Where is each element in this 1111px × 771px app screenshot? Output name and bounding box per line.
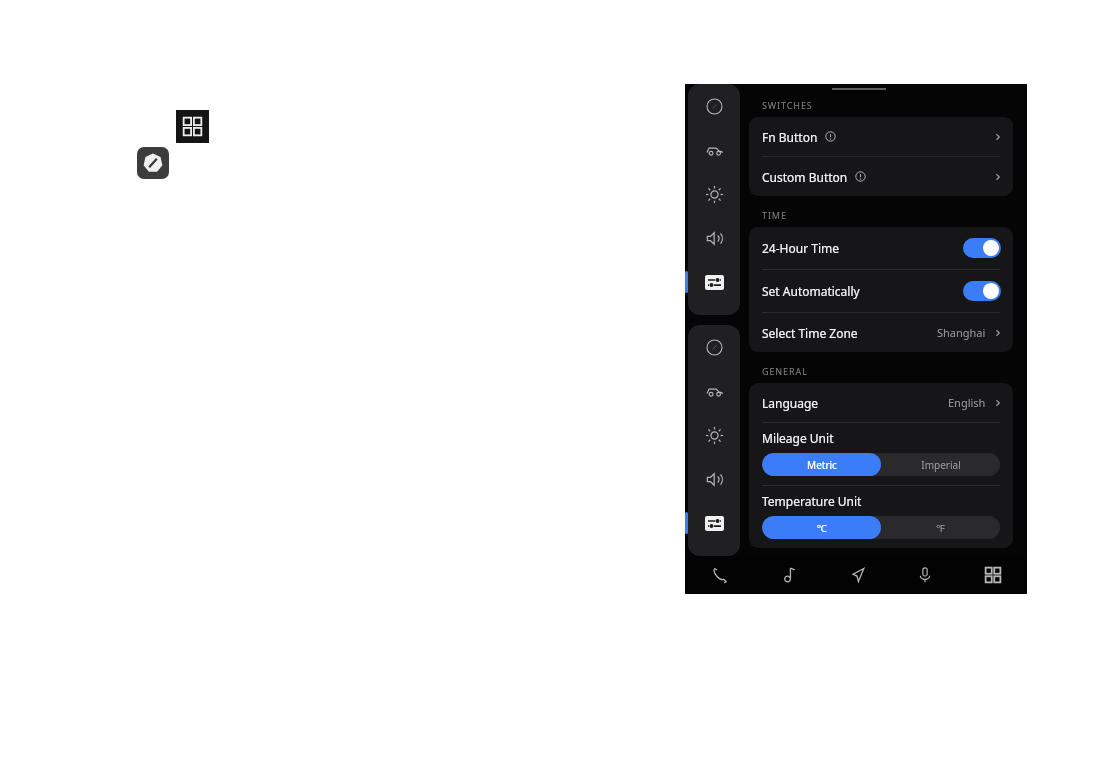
button[interactable]: Display brightness <box>688 413 740 457</box>
staticText: English <box>948 395 986 410</box>
staticText: ℉ <box>936 521 945 535</box>
staticText: Custom Button <box>762 169 848 185</box>
staticText: Temperature Unit <box>762 493 862 509</box>
staticText: Set Automatically <box>762 283 860 299</box>
button[interactable]: Drive mode <box>137 147 169 179</box>
staticText: Metric <box>807 458 837 472</box>
button[interactable]: Set Automatically <box>749 270 1013 312</box>
staticText: Select Time Zone <box>762 325 858 341</box>
button[interactable]: Settings <box>688 501 740 545</box>
button[interactable]: Sound <box>688 457 740 501</box>
staticText: ℃ <box>817 521 827 535</box>
button[interactable]: All apps <box>959 556 1027 594</box>
button[interactable]: Voice assistant <box>891 556 959 594</box>
staticText: 24-Hour Time <box>762 240 839 256</box>
staticText: GENERAL <box>762 365 808 377</box>
button[interactable]: Sound <box>688 216 740 260</box>
button[interactable]: Custom Button <box>749 157 1013 196</box>
button[interactable]: Navigation <box>823 556 891 594</box>
button[interactable]: Metric <box>762 453 881 476</box>
button[interactable]: Apps grid <box>176 110 209 143</box>
button[interactable]: ℃ <box>762 516 881 539</box>
staticText: Mileage Unit <box>762 430 834 446</box>
staticText: Language <box>762 395 819 411</box>
button[interactable]: Fn Button <box>749 117 1013 156</box>
button[interactable]: Display brightness <box>688 172 740 216</box>
button[interactable]: Select Time Zone <box>749 313 1013 352</box>
button[interactable]: Imperial <box>881 453 1000 476</box>
button[interactable]: 24-Hour Time <box>749 227 1013 269</box>
button[interactable]: Language <box>749 383 1013 422</box>
staticText: TIME <box>762 209 787 221</box>
button[interactable]: ℉ <box>881 516 1000 539</box>
button[interactable]: Vehicle <box>688 128 740 172</box>
button[interactable]: Music <box>754 556 823 594</box>
button[interactable]: Vehicle <box>688 369 740 413</box>
button[interactable]: Settings <box>688 260 740 304</box>
button[interactable]: Phone <box>685 556 754 594</box>
staticText: Imperial <box>921 458 961 472</box>
staticText: Shanghai <box>937 325 986 340</box>
button[interactable]: Compass <box>688 325 740 369</box>
staticText: SWITCHES <box>762 99 813 111</box>
button[interactable]: Compass <box>688 84 740 128</box>
staticText: Fn Button <box>762 129 818 145</box>
